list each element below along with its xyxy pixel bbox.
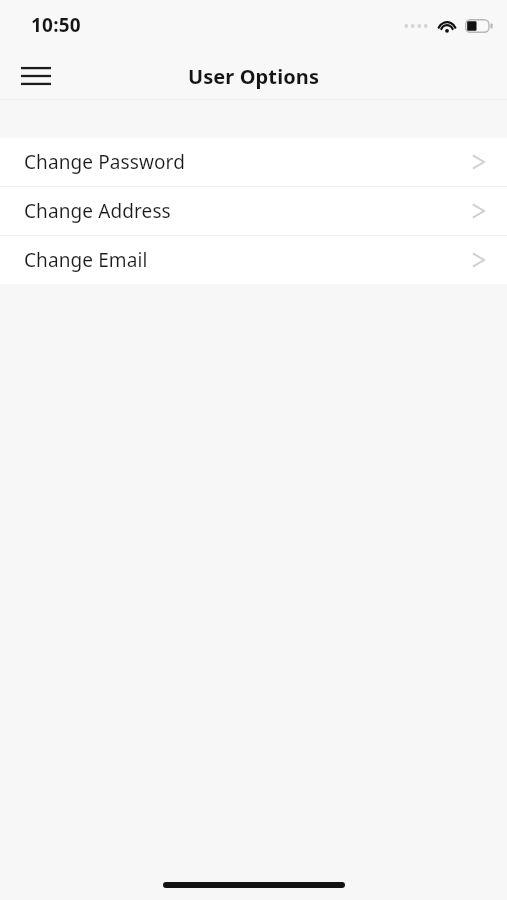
staticText: 10:50 xyxy=(31,12,81,38)
button[interactable]: Change Address xyxy=(0,187,507,235)
staticText: Change Address xyxy=(24,198,472,224)
staticText: User Options xyxy=(0,63,507,90)
button[interactable]: Change Email xyxy=(0,236,507,284)
staticText: Change Email xyxy=(24,247,472,273)
staticText: Change Password xyxy=(24,149,472,175)
button[interactable]: Open navigation menu xyxy=(14,54,58,98)
button[interactable]: Change Password xyxy=(0,138,507,186)
